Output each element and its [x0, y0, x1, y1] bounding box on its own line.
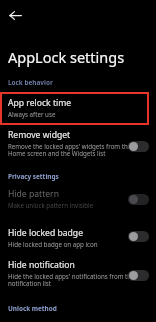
button[interactable] [0, 125, 156, 161]
button[interactable]: Toggle [128, 193, 149, 205]
button[interactable]: Toggle [128, 140, 149, 152]
button[interactable]: App relock time [1, 93, 148, 124]
button[interactable]: Toggle [128, 269, 149, 281]
staticText: Privacy settings [8, 172, 59, 181]
button[interactable] [0, 184, 156, 212]
staticText: Hide locked badge on app icon [8, 240, 98, 248]
staticText: Lock behavior [8, 78, 53, 87]
staticText: Always after use [8, 110, 56, 118]
staticText: Hide locked badge [8, 227, 83, 239]
button[interactable]: Toggle [128, 230, 149, 242]
staticText: Remove widget [8, 129, 71, 141]
staticText: Hide pattern [8, 188, 59, 200]
button[interactable]: Back [2, 2, 28, 28]
button[interactable] [0, 223, 156, 251]
staticText: Unlock method [8, 304, 57, 313]
staticText: Hide the locked apps' notifications from… [8, 272, 135, 288]
staticText: Make unlock pattern invisible [8, 201, 94, 209]
button[interactable] [0, 255, 156, 291]
staticText: App relock time [8, 97, 72, 109]
staticText: Hide notification [8, 259, 75, 271]
staticText: Remove the locked apps' widgets from the… [8, 142, 132, 158]
staticText: AppLock settings [8, 47, 125, 67]
